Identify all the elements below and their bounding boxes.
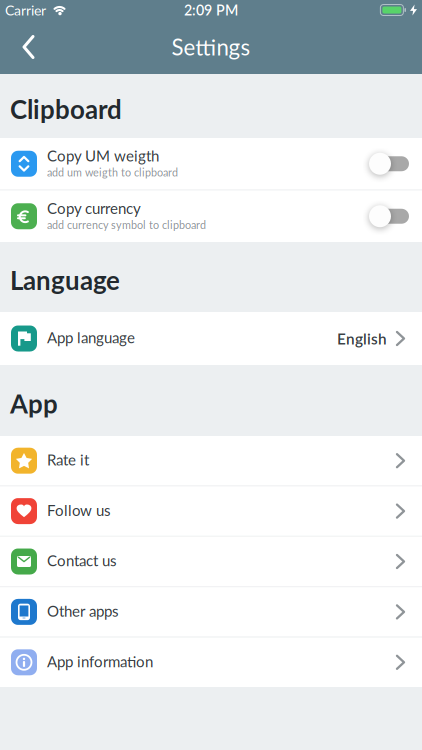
staticText: Rate it xyxy=(47,451,89,469)
button[interactable]: Copy currency xyxy=(370,205,422,227)
staticText: App xyxy=(10,388,58,419)
staticText: add currency symbol to clipboard xyxy=(47,218,206,231)
staticText: Settings xyxy=(171,34,250,60)
staticText: Other apps xyxy=(47,602,119,620)
button[interactable]: App information xyxy=(0,638,422,687)
staticText: App language xyxy=(47,328,135,347)
staticText: Carrier xyxy=(5,1,46,18)
button[interactable]: Follow us xyxy=(0,486,422,536)
staticText: add um weigth to clipboard xyxy=(47,166,178,179)
button[interactable]: Rate it xyxy=(0,436,422,485)
staticText: Clipboard xyxy=(10,93,122,124)
staticText: Copy currency xyxy=(47,199,141,217)
staticText: Copy UM weigth xyxy=(47,147,159,165)
button[interactable]: Back xyxy=(0,20,35,74)
staticText: 2:09 PM xyxy=(184,1,238,18)
staticText: Follow us xyxy=(47,501,111,519)
staticText: Contact us xyxy=(47,551,117,570)
button[interactable]: Contact us xyxy=(0,537,422,586)
button[interactable]: Copy UM weigth xyxy=(370,153,422,175)
staticText: Language xyxy=(10,264,120,295)
staticText: App information xyxy=(47,652,153,670)
button[interactable]: App language xyxy=(0,312,422,365)
button[interactable]: Other apps xyxy=(0,587,422,637)
staticText: English xyxy=(337,329,387,348)
